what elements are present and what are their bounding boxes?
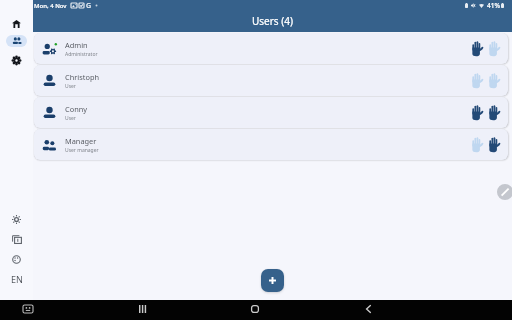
staticText: Conny [65,104,88,114]
staticText: Manager [65,136,97,146]
button[interactable]: Conny [34,97,508,128]
button[interactable]: Recent apps [131,299,153,319]
staticText: Users (4) [252,14,293,28]
button[interactable]: Add user [261,269,284,292]
button[interactable]: Raise hand second [487,41,503,57]
button[interactable]: Raise hand [470,137,486,153]
button[interactable]: Edit [497,184,512,200]
button[interactable]: Raise hand [470,73,486,89]
button[interactable]: EN [4,273,29,285]
button[interactable]: Home [4,16,29,32]
button[interactable]: Users [6,35,27,47]
button[interactable]: Screenshot [17,299,39,319]
staticText: Christoph [65,72,99,82]
button[interactable]: Raise hand [470,105,486,121]
staticText: G [86,1,92,11]
staticText: User [65,115,76,122]
button[interactable]: Pages [4,232,29,247]
staticText: EN [11,273,23,285]
button[interactable]: Brightness [4,212,29,227]
button[interactable]: Christoph [34,65,508,96]
button[interactable]: Raise hand second [487,137,503,153]
button[interactable]: Admin [34,33,508,64]
button[interactable]: Raise hand [470,41,486,57]
button[interactable]: Theme [4,252,29,267]
button[interactable]: Raise hand second [487,105,503,121]
button[interactable]: Manager [34,129,508,160]
staticText: 41% [487,1,500,10]
staticText: Administrator [65,51,98,58]
button[interactable]: Home [244,299,266,319]
staticText: Admin [65,40,88,50]
staticText: Mon, 4 Nov [34,2,67,10]
staticText: User manager [65,147,99,154]
button[interactable]: Raise hand second [487,73,503,89]
staticText: User [65,83,76,90]
button[interactable]: Back [357,299,379,319]
button[interactable]: Settings [4,52,29,68]
